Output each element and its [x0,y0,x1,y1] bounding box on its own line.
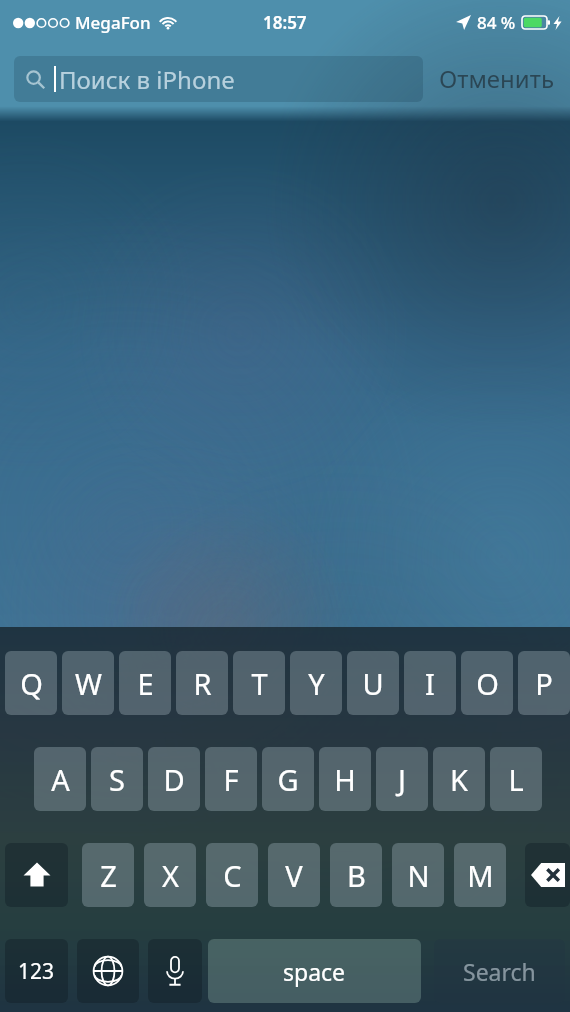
button[interactable]: J [376,747,428,811]
button[interactable]: W [62,651,114,715]
button[interactable]: Change keyboard [77,939,139,1003]
staticText: J [398,760,406,799]
staticText: Search [463,956,536,987]
button[interactable]: Search [434,939,565,1003]
button[interactable]: H [319,747,371,811]
button[interactable]: C [206,843,258,907]
staticText: D [163,760,185,799]
staticText: I [425,664,435,703]
staticText: Поиск в iPhone [59,63,235,96]
button[interactable]: V [268,843,320,907]
button[interactable]: P [518,651,570,715]
button[interactable]: L [490,747,542,811]
staticText: L [508,760,524,799]
button[interactable]: T [233,651,285,715]
staticText: M [467,856,494,895]
button[interactable]: F [205,747,257,811]
staticText: 123 [18,957,55,986]
staticText: space [283,956,346,987]
button[interactable]: M [454,843,506,907]
button[interactable]: X [144,843,196,907]
button[interactable]: Поиск в iPhone [14,56,423,102]
staticText: S [109,760,125,799]
staticText: B [347,856,366,895]
button[interactable]: N [392,843,444,907]
staticText: G [277,760,299,799]
staticText: T [251,664,268,703]
staticText: Q [20,664,43,703]
staticText: 18:57 [263,11,307,34]
staticText: O [476,664,499,703]
staticText: P [535,664,553,703]
button[interactable]: Отменить [435,54,558,103]
staticText: U [362,664,384,703]
staticText: MegaFon [75,11,151,34]
button[interactable]: S [91,747,143,811]
staticText: C [223,856,242,895]
staticText: W [75,664,102,703]
button[interactable]: I [404,651,456,715]
button[interactable]: Y [290,651,342,715]
button[interactable]: Dictation [148,939,202,1003]
button[interactable]: D [148,747,200,811]
button[interactable]: U [347,651,399,715]
staticText: F [223,760,239,799]
button[interactable]: K [433,747,485,811]
staticText: 84 % [477,11,516,34]
staticText: A [51,760,70,799]
staticText: V [285,856,303,895]
button[interactable]: space [208,939,421,1003]
staticText: Z [100,856,117,895]
button[interactable]: 123 [5,939,68,1003]
staticText: R [193,664,212,703]
button[interactable]: O [461,651,513,715]
button[interactable]: Z [82,843,134,907]
staticText: N [407,856,430,895]
staticText: E [137,664,154,703]
staticText: K [450,760,468,799]
staticText: X [162,856,179,895]
staticText: Y [308,664,325,703]
staticText: Отменить [439,62,554,95]
button[interactable]: Delete [525,843,570,907]
button[interactable]: A [34,747,86,811]
button[interactable]: B [330,843,382,907]
button[interactable]: Q [5,651,57,715]
staticText: H [334,760,356,799]
button[interactable]: G [262,747,314,811]
button[interactable]: E [119,651,171,715]
button[interactable]: Shift [5,843,68,907]
button[interactable]: R [176,651,228,715]
